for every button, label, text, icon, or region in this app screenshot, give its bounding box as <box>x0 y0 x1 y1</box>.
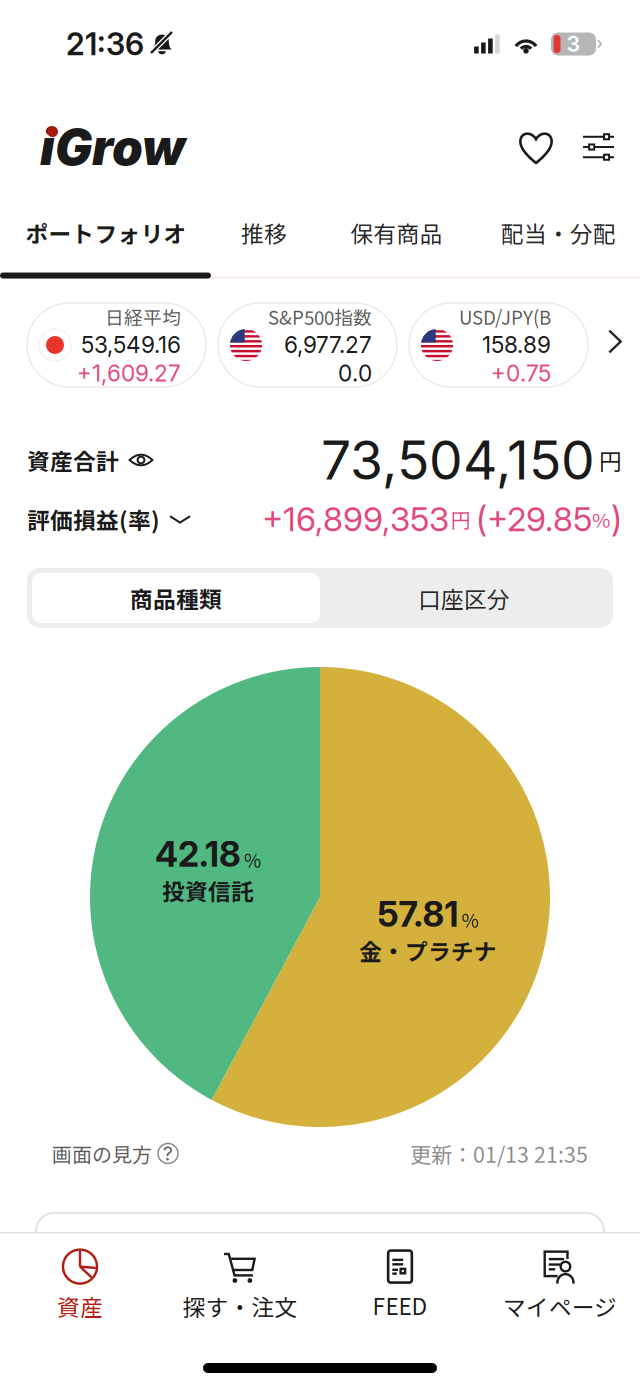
staticText: 21:36 <box>66 25 144 62</box>
button[interactable]: 推移 <box>212 193 316 271</box>
button[interactable]: 配当・分配 <box>477 193 640 271</box>
button[interactable]: Filter settings <box>575 123 622 170</box>
staticText: 6,977.27 <box>284 331 372 358</box>
staticText: 金・プラチナ <box>359 934 497 967</box>
staticText: 更新：01/13 21:35 <box>410 1138 588 1169</box>
staticText: FEED <box>372 1289 427 1321</box>
staticText: 円 <box>599 444 622 476</box>
staticText: 探す・注文 <box>182 1290 297 1322</box>
staticText: 3 <box>566 31 580 57</box>
staticText: 評価損益(率) <box>27 503 160 535</box>
staticText: USD/JPY(B <box>459 303 551 330</box>
staticText: 口座区分 <box>418 582 510 614</box>
staticText: iGrow <box>40 117 185 177</box>
staticText: +0.75 <box>491 359 551 387</box>
button[interactable]: 資産 <box>0 1238 160 1330</box>
button[interactable]: 商品種類 <box>32 573 320 623</box>
staticText: 158.89 <box>482 331 551 358</box>
button[interactable]: USD/JPY(B <box>409 303 588 387</box>
staticText: マイページ <box>503 1290 617 1322</box>
staticText: +29.85 <box>487 499 592 539</box>
button[interactable]: More indices <box>596 322 634 360</box>
staticText: 57.81 <box>377 893 458 935</box>
button[interactable]: 画面の見方 <box>52 1139 178 1168</box>
staticText: ( <box>476 498 487 540</box>
staticText: 42.18 <box>155 833 241 875</box>
staticText: ) <box>611 498 622 540</box>
staticText: 円 <box>451 504 471 533</box>
button[interactable]: 日経平均 <box>27 303 206 387</box>
button[interactable]: 口座区分 <box>320 573 608 623</box>
button[interactable]: 探す・注文 <box>160 1238 320 1330</box>
staticText: 保有商品 <box>350 216 442 249</box>
staticText: +16,899,353 <box>262 499 449 539</box>
staticText: 推移 <box>241 216 287 249</box>
staticText: 資産合計 <box>27 444 119 476</box>
button[interactable]: ポートフォリオ <box>0 193 212 271</box>
staticText: 投資信託 <box>162 874 254 907</box>
button[interactable]: S&P500指数 <box>218 303 397 387</box>
staticText: 0.0 <box>338 359 372 387</box>
staticText: 画面の見方 <box>52 1139 152 1168</box>
staticText: 73,504,150 <box>321 428 595 492</box>
button[interactable]: FEED <box>320 1239 480 1329</box>
button[interactable]: 保有商品 <box>316 193 477 271</box>
staticText: 53,549.16 <box>81 331 181 358</box>
staticText: % <box>244 846 261 873</box>
button[interactable]: マイページ <box>480 1238 640 1330</box>
staticText: ポートフォリオ <box>25 216 186 249</box>
button[interactable]: Favorites <box>511 122 561 172</box>
staticText: % <box>461 906 478 933</box>
staticText: % <box>592 504 610 533</box>
staticText: 配当・分配 <box>501 216 616 249</box>
staticText: S&P500指数 <box>268 303 372 330</box>
staticText: +1,609.27 <box>77 359 181 387</box>
staticText: 日経平均 <box>105 303 181 330</box>
staticText: ? <box>163 1142 173 1165</box>
staticText: 資産 <box>57 1290 103 1322</box>
staticText: 商品種類 <box>130 582 222 614</box>
